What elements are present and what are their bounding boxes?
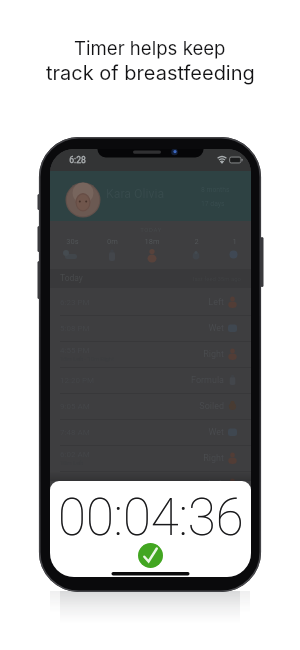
staticText: Today — [60, 273, 83, 283]
staticText: 6:28 — [69, 155, 86, 165]
staticText: 1:30 AM — [60, 480, 90, 489]
staticText: Right — [203, 349, 224, 360]
staticText: 00:04:36 — [58, 488, 244, 536]
staticText: 0m — [107, 237, 118, 246]
staticText: Wet — [208, 323, 224, 334]
staticText: Left — [208, 479, 224, 490]
staticText: Formula — [190, 375, 224, 386]
button[interactable] — [50, 471, 251, 497]
staticText: Left — [208, 297, 224, 308]
button[interactable] — [50, 171, 251, 221]
button[interactable] — [138, 543, 163, 568]
staticText: 30s — [66, 237, 79, 246]
staticText: track of breastfeeding — [46, 61, 255, 85]
staticText: 00:04:36 — [58, 488, 244, 536]
staticText: Soiled — [199, 401, 224, 412]
staticText: Timer helps keep — [74, 37, 226, 60]
staticText: 1 — [232, 237, 237, 246]
staticText: 18m — [144, 237, 160, 246]
staticText: Right — [203, 453, 224, 464]
staticText: Wet — [208, 427, 224, 438]
staticText: 2 — [194, 237, 199, 246]
